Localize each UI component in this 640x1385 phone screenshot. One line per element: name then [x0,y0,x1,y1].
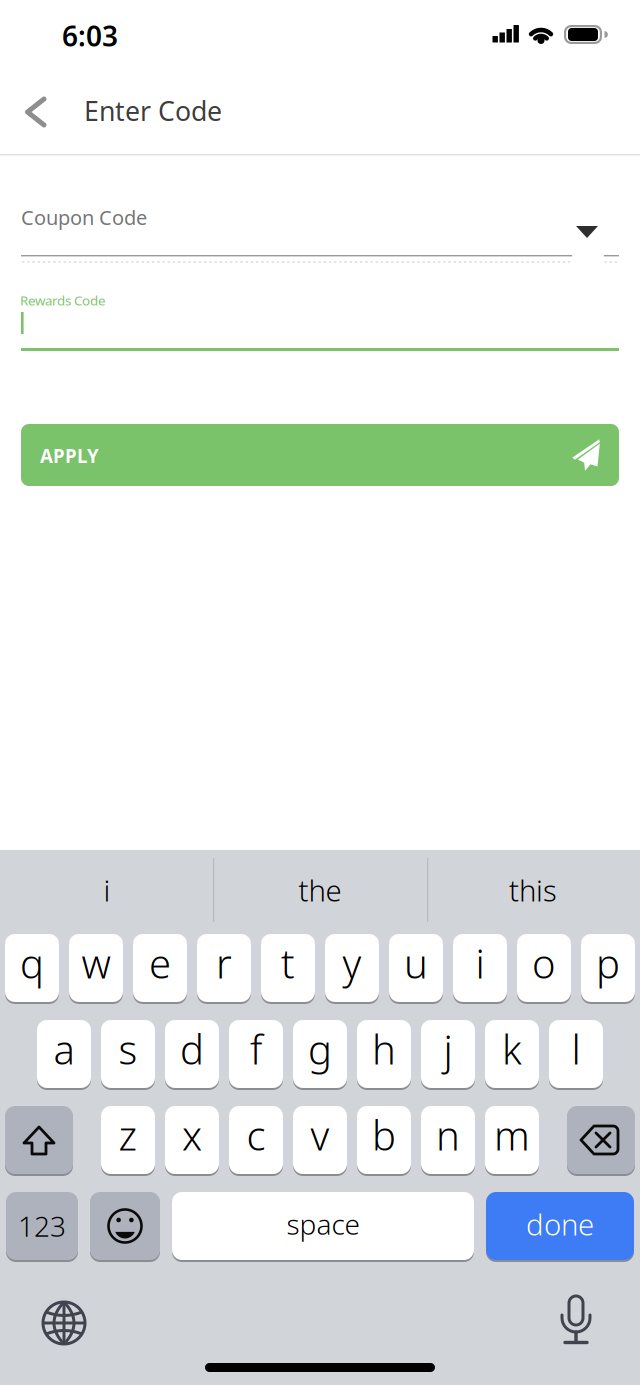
staticText: h [372,1022,396,1075]
staticText: 123 [18,1207,66,1245]
button[interactable]: the [0,0,182,64]
staticText: i [475,936,484,989]
staticText: c [246,1108,265,1161]
staticText: r [216,936,232,989]
button[interactable]: done [0,0,148,68]
button[interactable]: Dictate [0,0,64,64]
staticText: b [372,1108,396,1161]
button[interactable]: Coupon Code [0,0,598,58]
staticText: w [81,936,110,989]
staticText: l [571,1022,580,1075]
staticText: 6:03 [62,17,118,54]
staticText: this [509,870,557,909]
button[interactable]: i [0,0,182,64]
staticText: v [310,1108,329,1161]
staticText: done [526,1204,594,1243]
staticText: APPLY [40,443,99,468]
staticText: Rewards Code [20,291,106,309]
staticText: s [118,1022,137,1075]
button[interactable]: 123 [0,0,72,68]
staticText: d [180,1022,204,1075]
button[interactable]: Rewards Code [0,0,598,62]
staticText: k [502,1022,522,1075]
staticText: the [298,870,341,909]
button[interactable]: Emoji [0,0,70,68]
button[interactable]: space [0,0,302,68]
button[interactable]: Shift [0,0,68,68]
staticText: e [149,936,171,989]
button[interactable]: this [0,0,182,64]
staticText: a [53,1022,74,1075]
staticText: Coupon Code [21,204,147,231]
staticText: u [404,936,428,989]
staticText: t [281,936,295,989]
staticText: f [250,1022,262,1075]
staticText: p [596,936,620,989]
staticText: o [532,936,556,989]
staticText: j [443,1022,452,1075]
button[interactable]: Delete [0,0,68,68]
staticText: q [20,936,44,989]
staticText: i [103,870,110,909]
staticText: n [436,1108,460,1161]
staticText: m [494,1108,530,1161]
button[interactable]: Next keyboard [0,0,64,64]
staticText: y [342,936,361,989]
staticText: space [286,1205,359,1243]
button[interactable]: Apply [0,0,598,62]
staticText: Enter Code [84,93,222,128]
staticText: g [308,1022,332,1075]
staticText: z [118,1108,137,1161]
staticText: x [182,1108,202,1161]
